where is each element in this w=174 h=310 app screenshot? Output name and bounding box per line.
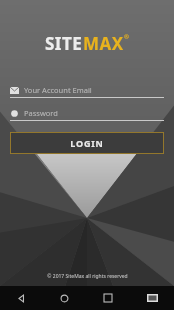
staticText: SITE: [45, 32, 83, 55]
button[interactable]: Keyboard: [130, 286, 174, 310]
staticText: Your Account Email: [24, 85, 92, 95]
button[interactable]: Password: [10, 106, 164, 121]
staticText: ®: [124, 33, 129, 41]
staticText: MAX: [83, 32, 124, 55]
button[interactable]: Back: [0, 286, 43, 310]
button[interactable]: LOGIN: [10, 132, 164, 154]
staticText: Password: [24, 108, 58, 118]
button[interactable]: Your Account Email: [10, 83, 164, 98]
button[interactable]: Home: [43, 286, 86, 310]
staticText: © 2017 SiteMax all rights reserved: [47, 273, 128, 280]
staticText: LOGIN: [70, 137, 104, 149]
button[interactable]: Recent apps: [86, 286, 130, 310]
